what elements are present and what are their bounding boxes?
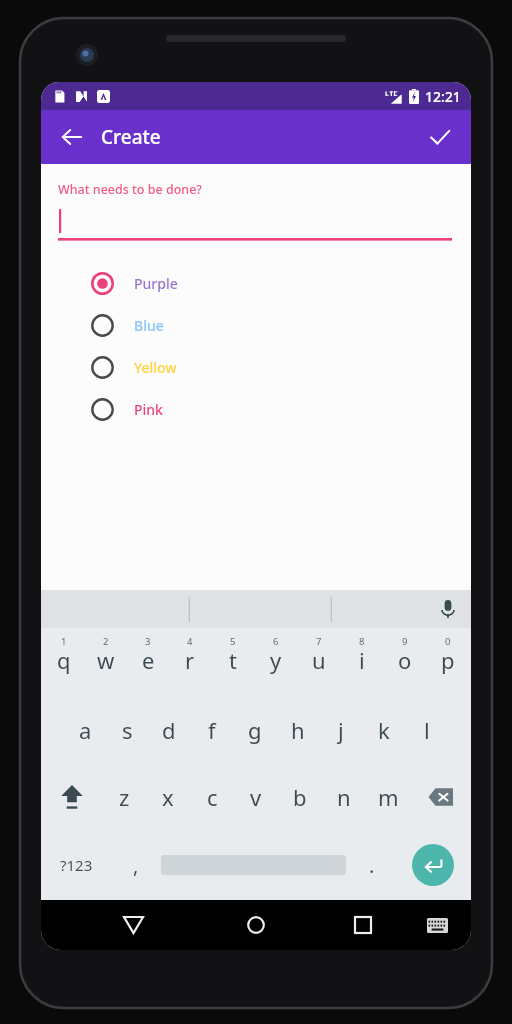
button[interactable]: 2	[85, 628, 127, 696]
button[interactable]: 9	[383, 628, 426, 696]
button[interactable]: .	[348, 830, 395, 900]
button[interactable]: Recents	[341, 903, 385, 947]
button[interactable]	[159, 830, 348, 900]
button[interactable]	[58, 207, 452, 241]
button[interactable]: z	[102, 763, 146, 830]
staticText: j	[338, 715, 344, 745]
button[interactable]: Switch keyboard	[417, 905, 457, 945]
staticText: t	[229, 645, 237, 675]
staticText: f	[208, 715, 216, 745]
button[interactable]: Purple	[41, 262, 471, 304]
button[interactable]: d	[148, 696, 190, 763]
button[interactable]: ?123	[41, 830, 112, 900]
staticText: c	[207, 782, 218, 812]
button[interactable]: 8	[340, 628, 383, 696]
button[interactable]: Back	[111, 903, 155, 947]
button[interactable]: Backspace	[410, 763, 471, 830]
staticText: Purple	[134, 274, 178, 293]
staticText: 1	[61, 635, 67, 648]
button[interactable]: ,	[112, 830, 159, 900]
button[interactable]: 7	[297, 628, 340, 696]
button[interactable]: Back	[53, 118, 91, 156]
button[interactable]: v	[234, 763, 278, 830]
staticText: 6	[273, 635, 279, 648]
staticText: What needs to be done?	[58, 181, 202, 198]
staticText: u	[312, 645, 326, 675]
button[interactable]: Enter	[395, 830, 471, 900]
button[interactable]: Blue	[41, 304, 471, 346]
staticText: Create	[101, 124, 161, 150]
staticText: v	[250, 782, 262, 812]
staticText: z	[119, 782, 130, 812]
button[interactable]: 3	[127, 628, 169, 696]
button[interactable]: Voice input	[433, 594, 463, 624]
button[interactable]: 1	[43, 628, 85, 696]
button[interactable]: h	[276, 696, 319, 763]
staticText: 12:21	[425, 87, 461, 106]
staticText: h	[291, 715, 305, 745]
staticText: e	[142, 645, 155, 675]
staticText: p	[441, 645, 455, 675]
staticText: n	[337, 782, 351, 812]
staticText: s	[122, 715, 133, 745]
staticText: ?123	[60, 855, 93, 875]
staticText: 5	[230, 635, 236, 648]
button[interactable]: f	[190, 696, 233, 763]
staticText: 3	[145, 635, 151, 648]
button[interactable]: k	[362, 696, 405, 763]
button[interactable]: l	[405, 696, 448, 763]
button[interactable]: n	[322, 763, 366, 830]
staticText: g	[248, 715, 262, 745]
staticText: d	[162, 715, 176, 745]
staticText: 8	[359, 635, 365, 648]
button[interactable]: Home	[234, 903, 278, 947]
button[interactable]: 4	[169, 628, 211, 696]
staticText: Yellow	[134, 358, 177, 377]
button[interactable]: 0	[426, 628, 469, 696]
button[interactable]: Shift	[41, 763, 102, 830]
button[interactable]: Yellow	[41, 346, 471, 388]
button[interactable]: c	[190, 763, 234, 830]
staticText: 4	[187, 635, 193, 648]
staticText: x	[162, 782, 174, 812]
staticText: 9	[402, 635, 408, 648]
staticText: b	[293, 782, 307, 812]
staticText: y	[270, 645, 282, 675]
staticText: ,	[133, 852, 139, 879]
staticText: o	[398, 645, 412, 675]
staticText: 2	[103, 635, 109, 648]
staticText: Blue	[134, 316, 164, 335]
staticText: q	[57, 645, 71, 675]
button[interactable]: m	[366, 763, 410, 830]
staticText: k	[378, 715, 390, 745]
staticText: l	[424, 715, 430, 745]
button[interactable]: x	[146, 763, 190, 830]
staticText: i	[359, 645, 365, 675]
staticText: r	[185, 645, 195, 675]
staticText: 0	[445, 635, 451, 648]
button[interactable]: j	[319, 696, 362, 763]
button[interactable]: Save	[421, 118, 459, 156]
staticText: 7	[316, 635, 322, 648]
button[interactable]: g	[233, 696, 276, 763]
button[interactable]: 5	[211, 628, 254, 696]
button[interactable]: b	[278, 763, 322, 830]
button[interactable]: a	[64, 696, 106, 763]
button[interactable]: s	[106, 696, 148, 763]
staticText: w	[97, 645, 115, 675]
staticText: Pink	[134, 400, 163, 419]
staticText: m	[378, 782, 399, 812]
button[interactable]: Pink	[41, 388, 471, 430]
button[interactable]: 6	[254, 628, 297, 696]
staticText: .	[369, 852, 375, 879]
staticText: a	[79, 715, 92, 745]
